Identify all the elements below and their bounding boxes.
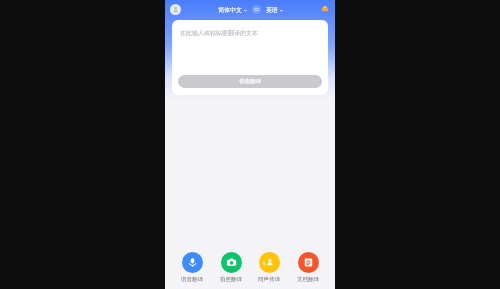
staticText: 英语	[266, 6, 278, 14]
staticText: 同声传译	[258, 276, 280, 283]
button[interactable]: 语音翻译	[174, 250, 210, 285]
staticText: 在此输入或粘贴要翻译的文本	[180, 29, 258, 37]
staticText: 拍照翻译	[220, 276, 242, 283]
staticText: 文档翻译	[297, 276, 319, 283]
button[interactable]: 英语	[266, 6, 283, 14]
button[interactable]: 同声传译	[251, 250, 287, 285]
button[interactable]: 文档翻译	[290, 250, 326, 285]
button[interactable]: 拍照翻译	[213, 250, 249, 285]
staticText: 简体中文	[218, 6, 242, 14]
button[interactable]: Swap languages	[252, 5, 261, 14]
staticText: 语音翻译	[181, 276, 203, 283]
button[interactable]: Profile	[170, 4, 181, 15]
button[interactable]: Membership	[320, 4, 330, 14]
staticText: 快速翻译	[239, 78, 261, 85]
button[interactable]: 快速翻译	[178, 75, 322, 88]
button[interactable]: 简体中文	[218, 6, 247, 14]
button[interactable]: 在此输入或粘贴要翻译的文本	[172, 20, 328, 95]
